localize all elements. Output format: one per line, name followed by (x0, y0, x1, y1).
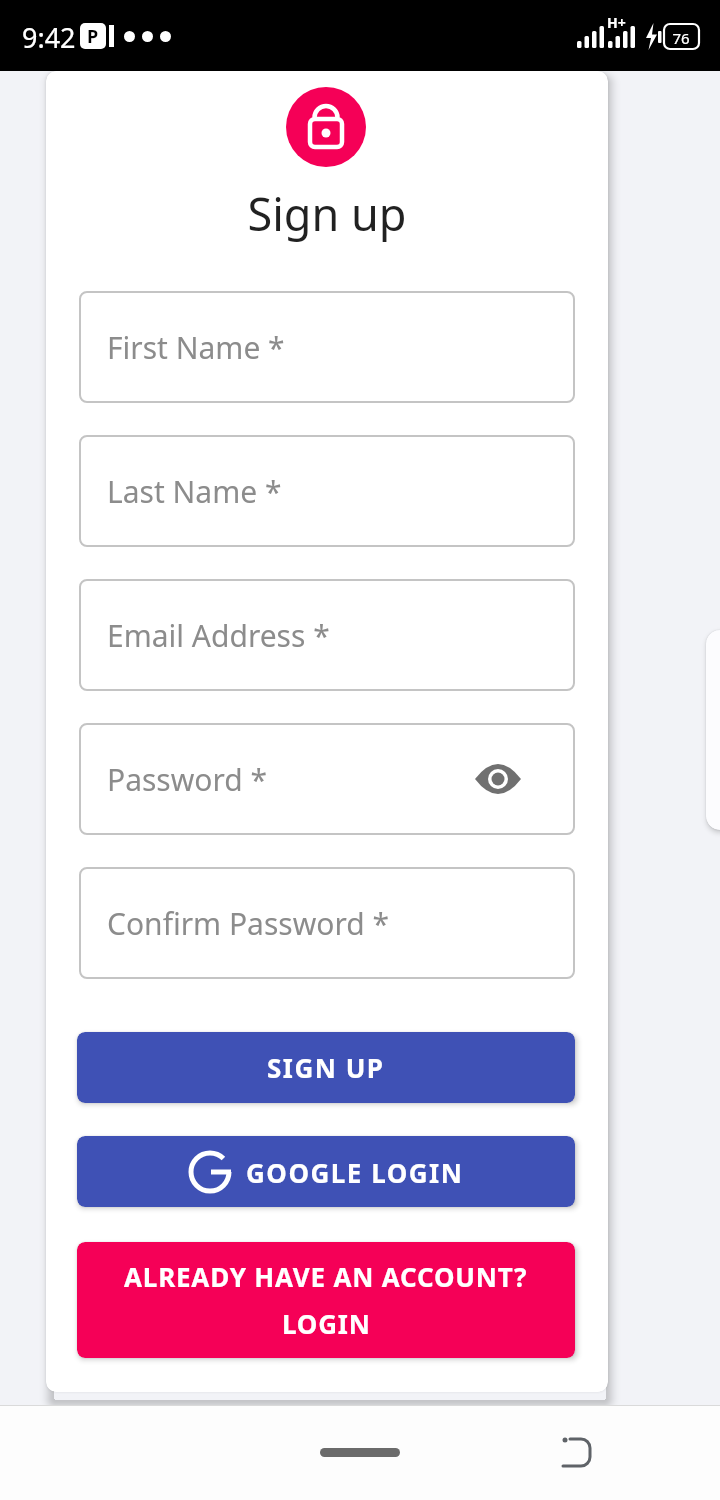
staticText: Confirm Password * (107, 903, 389, 944)
button[interactable]: Password * (79, 723, 575, 835)
button[interactable]: ALREADY HAVE AN ACCOUNT? (77, 1242, 575, 1358)
button[interactable]: Last Name * (79, 435, 575, 547)
button[interactable]: Confirm Password * (79, 867, 575, 979)
staticText: Email Address * (107, 615, 330, 656)
staticText: 76 (664, 28, 698, 48)
button[interactable]: First Name * (79, 291, 575, 403)
staticText: Last Name * (107, 471, 282, 512)
staticText: GOOGLE LOGIN (246, 1155, 464, 1190)
staticText: Sign up (46, 183, 608, 244)
staticText: 9:42 (22, 19, 76, 56)
staticText: Password * (107, 759, 268, 800)
staticText: First Name * (107, 327, 285, 368)
button[interactable]: Email Address * (79, 579, 575, 691)
staticText: LOGIN (282, 1306, 371, 1341)
staticText: H+ (607, 13, 626, 32)
button[interactable]: GOOGLE LOGIN (77, 1136, 575, 1207)
staticText: P (87, 24, 99, 49)
button[interactable] (320, 1448, 400, 1457)
staticText: ALREADY HAVE AN ACCOUNT? (124, 1259, 528, 1294)
button[interactable]: SIGN UP (77, 1032, 575, 1103)
staticText: SIGN UP (267, 1050, 385, 1085)
